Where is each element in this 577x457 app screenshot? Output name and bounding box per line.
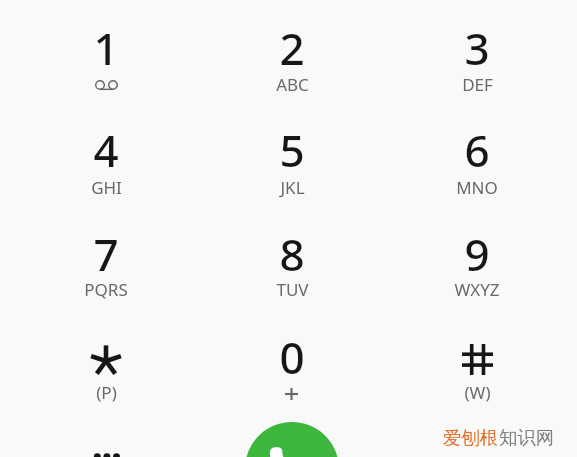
- staticText: DEF: [462, 73, 493, 96]
- button[interactable]: Key 2 ABC: [232, 12, 352, 107]
- staticText: 1: [93, 18, 119, 70]
- button[interactable]: Key 7 PQRS: [46, 218, 166, 313]
- staticText: 0: [279, 327, 305, 379]
- button[interactable]: Key 4 GHI: [46, 115, 166, 210]
- staticText: MNO: [456, 176, 498, 199]
- button[interactable]: Key 1 voicemail: [46, 12, 166, 107]
- staticText: 5: [279, 120, 305, 172]
- staticText: 2: [279, 18, 305, 70]
- staticText: 3: [464, 18, 490, 70]
- button[interactable]: Key 3 DEF: [417, 12, 537, 107]
- staticText: 爱刨根: [443, 426, 499, 449]
- button[interactable]: Key 5 JKL: [232, 115, 352, 210]
- staticText: GHI: [91, 176, 122, 199]
- staticText: WXYZ: [454, 278, 500, 301]
- button[interactable]: Key pound: [417, 321, 537, 416]
- staticText: 4: [93, 120, 119, 172]
- staticText: JKL: [280, 176, 305, 199]
- staticText: TUV: [276, 278, 309, 301]
- staticText: 6: [464, 120, 490, 172]
- button[interactable]: More options: [86, 439, 128, 457]
- button[interactable]: Key 6 MNO: [417, 115, 537, 210]
- button[interactable]: Key 9 WXYZ: [417, 218, 537, 313]
- staticText: 8: [279, 224, 305, 276]
- staticText: (W): [464, 381, 491, 404]
- button[interactable]: Call: [245, 422, 339, 457]
- button[interactable]: Key star: [46, 321, 166, 416]
- staticText: 9: [464, 224, 490, 276]
- staticText: PQRS: [84, 278, 128, 301]
- staticText: ABC: [276, 73, 309, 96]
- staticText: (P): [96, 381, 117, 404]
- staticText: 7: [93, 224, 119, 276]
- staticText: 知识网: [499, 426, 555, 449]
- button[interactable]: Key 8 TUV: [232, 218, 352, 313]
- button[interactable]: Key 0 plus: [232, 321, 352, 416]
